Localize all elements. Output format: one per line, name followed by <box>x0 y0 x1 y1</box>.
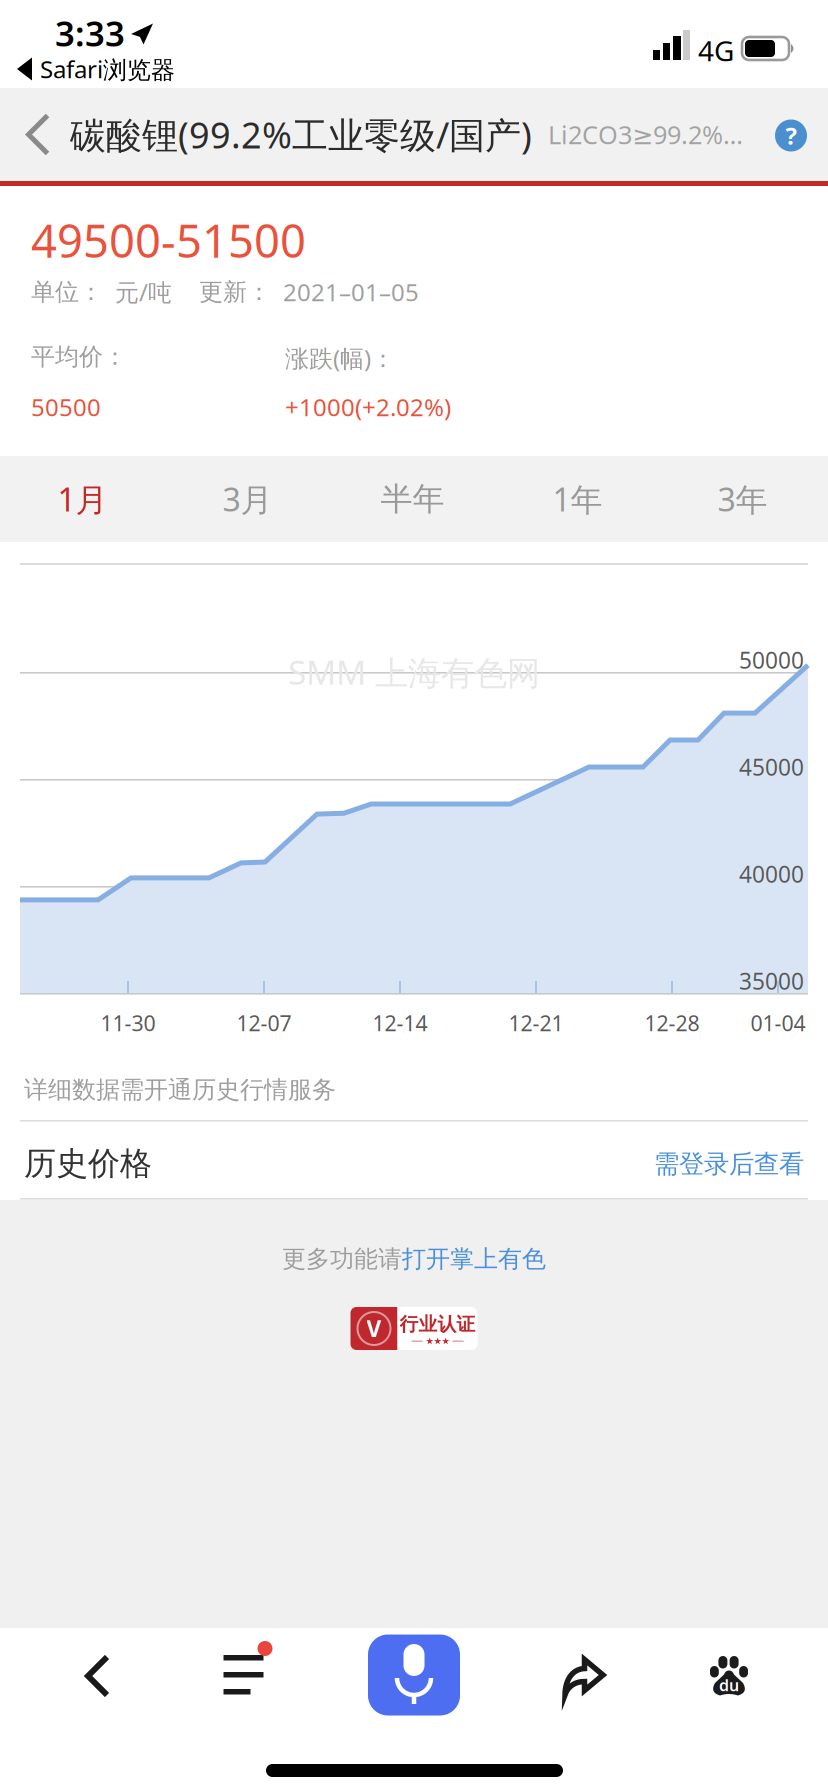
button[interactable]: Baidu <box>646 1631 812 1721</box>
button[interactable]: 3年 <box>660 456 825 542</box>
button[interactable]: 3月 <box>165 456 330 542</box>
staticText: 平均价： <box>31 342 127 371</box>
staticText: 49500-51500 <box>31 210 306 270</box>
staticText: 1年 <box>552 478 602 520</box>
staticText: 12-14 <box>372 1009 427 1037</box>
staticText: 11-30 <box>100 1009 155 1037</box>
staticText: +1000(+2.02%) <box>285 391 451 423</box>
button[interactable]: 更多功能请 <box>282 1239 546 1279</box>
staticText: 涨跌(幅)： <box>285 342 395 374</box>
staticText: 50500 <box>31 391 101 423</box>
staticText: 3:33 <box>55 10 125 56</box>
staticText: ? <box>785 120 796 151</box>
staticText: 打开掌上有色 <box>402 1244 546 1274</box>
staticText: du <box>719 1674 739 1696</box>
staticText: 单位： <box>31 277 103 307</box>
staticText: 更新： <box>199 277 271 307</box>
button[interactable]: Help <box>753 89 828 182</box>
staticText: V <box>366 1313 381 1343</box>
button[interactable]: 历史价格 <box>0 1122 828 1195</box>
staticText: 3年 <box>717 478 767 520</box>
staticText: 2021–01–05 <box>283 276 419 308</box>
staticText: 行业认证 <box>399 1313 475 1336</box>
staticText: Li2CO3≥99.2%… <box>548 118 743 151</box>
staticText: 3月 <box>222 478 272 520</box>
staticText: 12-07 <box>236 1009 291 1037</box>
staticText: 元/吨 <box>115 276 172 308</box>
staticText: 12-21 <box>508 1009 563 1037</box>
staticText: 45000 <box>739 752 804 782</box>
staticText: 12-28 <box>644 1009 699 1037</box>
staticText: ★★★ <box>425 1336 449 1346</box>
staticText: 半年 <box>380 479 444 519</box>
staticText: 01-04 <box>750 1009 805 1037</box>
staticText: 40000 <box>739 859 804 889</box>
button[interactable]: Voice search <box>331 1630 497 1720</box>
staticText: 35000 <box>739 966 804 996</box>
button[interactable]: Share <box>501 1632 667 1722</box>
button[interactable]: Menu <box>165 1632 331 1722</box>
staticText: 4G <box>698 32 734 69</box>
button[interactable]: Back <box>0 88 76 181</box>
staticText: 需登录后查看 <box>654 1148 804 1179</box>
staticText: 碳酸锂(99.2%工业零级/国产) <box>70 111 532 158</box>
staticText: 50000 <box>739 645 804 675</box>
staticText: SMM 上海有色网 <box>288 650 540 694</box>
staticText: 历史价格 <box>24 1144 152 1183</box>
staticText: 详细数据需开通历史行情服务 <box>24 1075 336 1104</box>
button[interactable]: 1月 <box>0 456 165 542</box>
button[interactable]: 1年 <box>495 456 660 542</box>
button[interactable]: Back <box>15 1632 181 1722</box>
staticText: 1月 <box>57 478 107 520</box>
staticText: Safari浏览器 <box>40 53 175 85</box>
staticText: 更多功能请 <box>282 1244 402 1274</box>
button[interactable]: 半年 <box>330 456 495 542</box>
